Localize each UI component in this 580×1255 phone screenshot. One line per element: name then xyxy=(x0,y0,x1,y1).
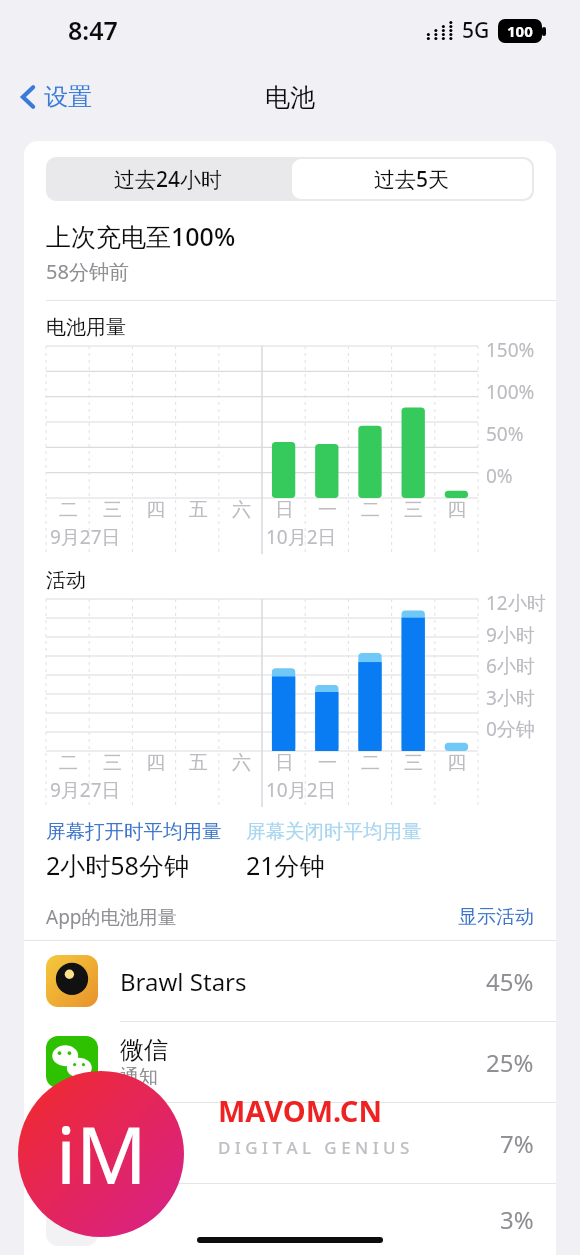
staticText: 45% xyxy=(486,965,534,998)
staticText: 5G xyxy=(462,16,490,45)
staticText: 二 xyxy=(361,751,380,775)
staticText: 电池 xyxy=(265,82,315,113)
staticText: 25% xyxy=(486,1046,534,1079)
staticText: 0分钟 xyxy=(486,716,535,742)
button[interactable]: 3% xyxy=(24,1184,556,1255)
staticText: 四 xyxy=(447,751,466,775)
staticText: 3% xyxy=(500,1203,534,1236)
staticText: 二 xyxy=(59,498,78,522)
staticText: D I G I T A L G E N I U S xyxy=(218,1136,410,1159)
staticText: 12小时 xyxy=(486,590,546,616)
staticText: 9月27日 xyxy=(50,777,121,803)
staticText: 6小时 xyxy=(486,653,535,679)
staticText: 三 xyxy=(404,498,423,522)
staticText: 9月27日 xyxy=(50,524,121,550)
staticText: App的电池用量 xyxy=(46,904,177,930)
staticText: 过去5天 xyxy=(374,165,450,194)
staticText: 7% xyxy=(500,1127,534,1160)
staticText: 10月2日 xyxy=(266,524,337,550)
staticText: 50% xyxy=(486,421,524,447)
staticText: 四 xyxy=(146,498,165,522)
button[interactable]: 设置 xyxy=(14,76,98,118)
staticText: 日 xyxy=(275,751,294,775)
staticText: 二 xyxy=(59,751,78,775)
staticText: 六 xyxy=(232,498,251,522)
staticText: 100 xyxy=(507,21,533,41)
staticText: 一 xyxy=(318,751,337,775)
staticText: 显示活动 xyxy=(458,905,534,929)
staticText: 日 xyxy=(275,498,294,522)
staticText: 通知 xyxy=(120,1065,158,1089)
button[interactable]: 微信 xyxy=(24,1022,556,1102)
staticText: 微信 xyxy=(120,1035,168,1065)
staticText: 三 xyxy=(103,498,122,522)
staticText: 9小时 xyxy=(486,622,535,648)
button[interactable]: Brawl Stars xyxy=(24,941,556,1021)
staticText: 10月2日 xyxy=(266,777,337,803)
staticText: 100% xyxy=(486,379,535,405)
staticText: 一 xyxy=(318,498,337,522)
button[interactable]: 7% xyxy=(24,1103,556,1183)
staticText: 电池用量 xyxy=(46,315,126,340)
staticText: 21分钟 xyxy=(246,848,325,882)
staticText: 五 xyxy=(189,751,208,775)
staticText: 过去24小时 xyxy=(114,165,223,194)
button[interactable]: 过去24小时 xyxy=(46,157,290,201)
staticText: 2小时58分钟 xyxy=(46,848,189,882)
staticText: 六 xyxy=(232,751,251,775)
staticText: 三 xyxy=(404,751,423,775)
staticText: 8:47 xyxy=(68,13,118,47)
button[interactable]: 过去5天 xyxy=(292,159,532,199)
staticText: 设置 xyxy=(44,82,92,112)
staticText: 58分钟前 xyxy=(46,258,129,285)
staticText: 活动 xyxy=(46,568,86,593)
staticText: 屏幕关闭时平均用量 xyxy=(246,819,422,844)
staticText: 0% xyxy=(486,463,513,489)
button[interactable]: 显示活动 xyxy=(458,905,534,929)
staticText: 二 xyxy=(361,498,380,522)
staticText: 3小时 xyxy=(486,685,535,711)
staticText: 上次充电至100% xyxy=(46,219,236,253)
staticText: 屏幕打开时平均用量 xyxy=(46,819,222,844)
staticText: 四 xyxy=(447,498,466,522)
staticText: Brawl Stars xyxy=(120,965,247,998)
staticText: 三 xyxy=(103,751,122,775)
staticText: 四 xyxy=(146,751,165,775)
staticText: MAVOM.CN xyxy=(218,1091,382,1130)
staticText: iM xyxy=(56,1101,147,1207)
staticText: 150% xyxy=(486,337,535,363)
staticText: 五 xyxy=(189,498,208,522)
